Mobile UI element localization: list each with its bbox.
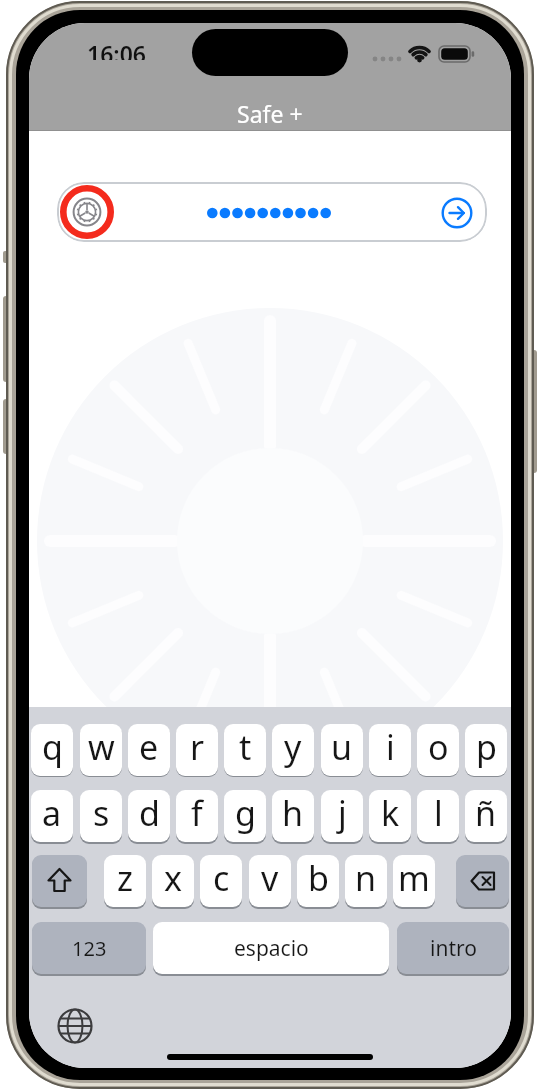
staticText: f — [191, 790, 203, 836]
staticText: s — [93, 790, 110, 836]
button[interactable]: y — [272, 724, 314, 776]
staticText: d — [139, 790, 160, 836]
button[interactable]: z — [104, 855, 146, 907]
staticText: ñ — [475, 790, 497, 836]
button[interactable]: ñ — [465, 790, 507, 842]
staticText: espacio — [234, 934, 309, 963]
button[interactable] — [57, 182, 487, 242]
button[interactable]: e — [128, 724, 170, 776]
button[interactable]: f — [176, 790, 218, 842]
button[interactable]: x — [152, 855, 194, 907]
button[interactable]: p — [465, 724, 507, 776]
button[interactable]: v — [249, 855, 291, 907]
staticText: p — [476, 724, 497, 770]
button[interactable]: c — [200, 855, 242, 907]
staticText: r — [190, 724, 205, 770]
staticText: c — [213, 855, 230, 901]
staticText: l — [434, 790, 443, 836]
button[interactable]: l — [417, 790, 459, 842]
button[interactable]: n — [345, 855, 387, 907]
staticText: 16:06 — [87, 38, 146, 60]
button[interactable] — [456, 855, 509, 907]
button[interactable] — [58, 1009, 92, 1043]
button[interactable]: t — [224, 724, 266, 776]
staticText: 123 — [72, 935, 107, 962]
button[interactable]: d — [128, 790, 170, 842]
staticText: k — [381, 790, 400, 836]
button[interactable]: j — [321, 790, 363, 842]
staticText: v — [261, 855, 279, 901]
staticText: j — [338, 790, 347, 836]
button[interactable]: o — [417, 724, 459, 776]
button[interactable]: k — [369, 790, 411, 842]
staticText: q — [42, 724, 63, 770]
button[interactable]: u — [321, 724, 363, 776]
button[interactable]: espacio — [153, 922, 389, 974]
button[interactable] — [441, 197, 473, 229]
button[interactable]: w — [80, 724, 122, 776]
staticText: b — [308, 855, 329, 901]
staticText: t — [239, 724, 252, 770]
button[interactable]: r — [176, 724, 218, 776]
button[interactable] — [32, 855, 87, 907]
staticText: m — [398, 855, 430, 901]
button[interactable]: b — [297, 855, 339, 907]
button[interactable]: m — [393, 855, 435, 907]
staticText: h — [282, 790, 304, 836]
staticText: n — [355, 855, 377, 901]
staticText: w — [88, 724, 115, 770]
button[interactable]: a — [31, 790, 73, 842]
button[interactable]: 123 — [32, 922, 146, 974]
staticText: Safe + — [237, 98, 303, 129]
staticText: z — [117, 855, 133, 901]
button[interactable]: intro — [397, 922, 509, 974]
staticText: g — [235, 790, 256, 836]
staticText: x — [164, 855, 182, 901]
button[interactable]: g — [224, 790, 266, 842]
staticText: e — [139, 724, 159, 770]
button[interactable]: h — [272, 790, 314, 842]
button[interactable]: q — [31, 724, 73, 776]
staticText: a — [42, 790, 62, 836]
staticText: u — [331, 724, 353, 770]
staticText: y — [284, 724, 302, 770]
button[interactable]: i — [369, 724, 411, 776]
staticText: i — [386, 724, 395, 770]
staticText: intro — [430, 934, 477, 963]
button[interactable]: s — [80, 790, 122, 842]
staticText: o — [428, 724, 449, 770]
